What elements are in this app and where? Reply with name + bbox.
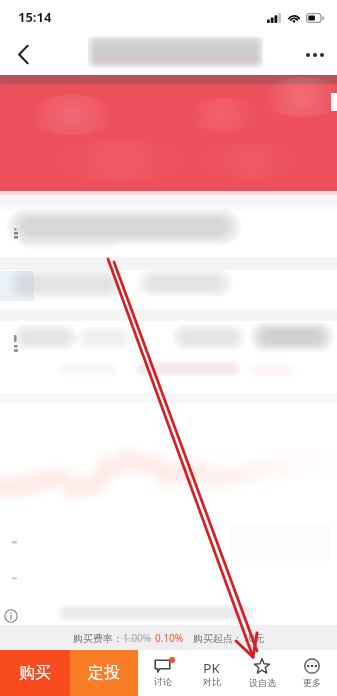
staticText: 0.10% (155, 631, 184, 645)
staticText: 15:14 (18, 8, 52, 26)
button[interactable]: 定投 (70, 650, 138, 696)
button[interactable]: 设自选 (237, 650, 287, 696)
staticText: 设自选 (249, 677, 276, 688)
button[interactable]: More options (293, 34, 337, 75)
staticText: PK (203, 659, 221, 673)
button[interactable]: 购买 (0, 650, 70, 696)
button[interactable]: Back (0, 34, 46, 75)
button[interactable]: 更多 (287, 650, 337, 696)
button[interactable]: PK (187, 650, 237, 696)
staticText: 对比 (203, 676, 221, 687)
staticText: 购买费率： (73, 632, 123, 645)
staticText: 讨论 (154, 676, 172, 687)
staticText: 1.00% (123, 631, 152, 645)
button[interactable]: 讨论 (138, 650, 187, 696)
staticText: 更多 (303, 677, 321, 688)
button[interactable]: Info (1, 606, 21, 626)
staticText: 购买起点：10元 (193, 631, 265, 645)
staticText: 购买 (19, 663, 51, 683)
staticText: 定投 (88, 663, 120, 683)
